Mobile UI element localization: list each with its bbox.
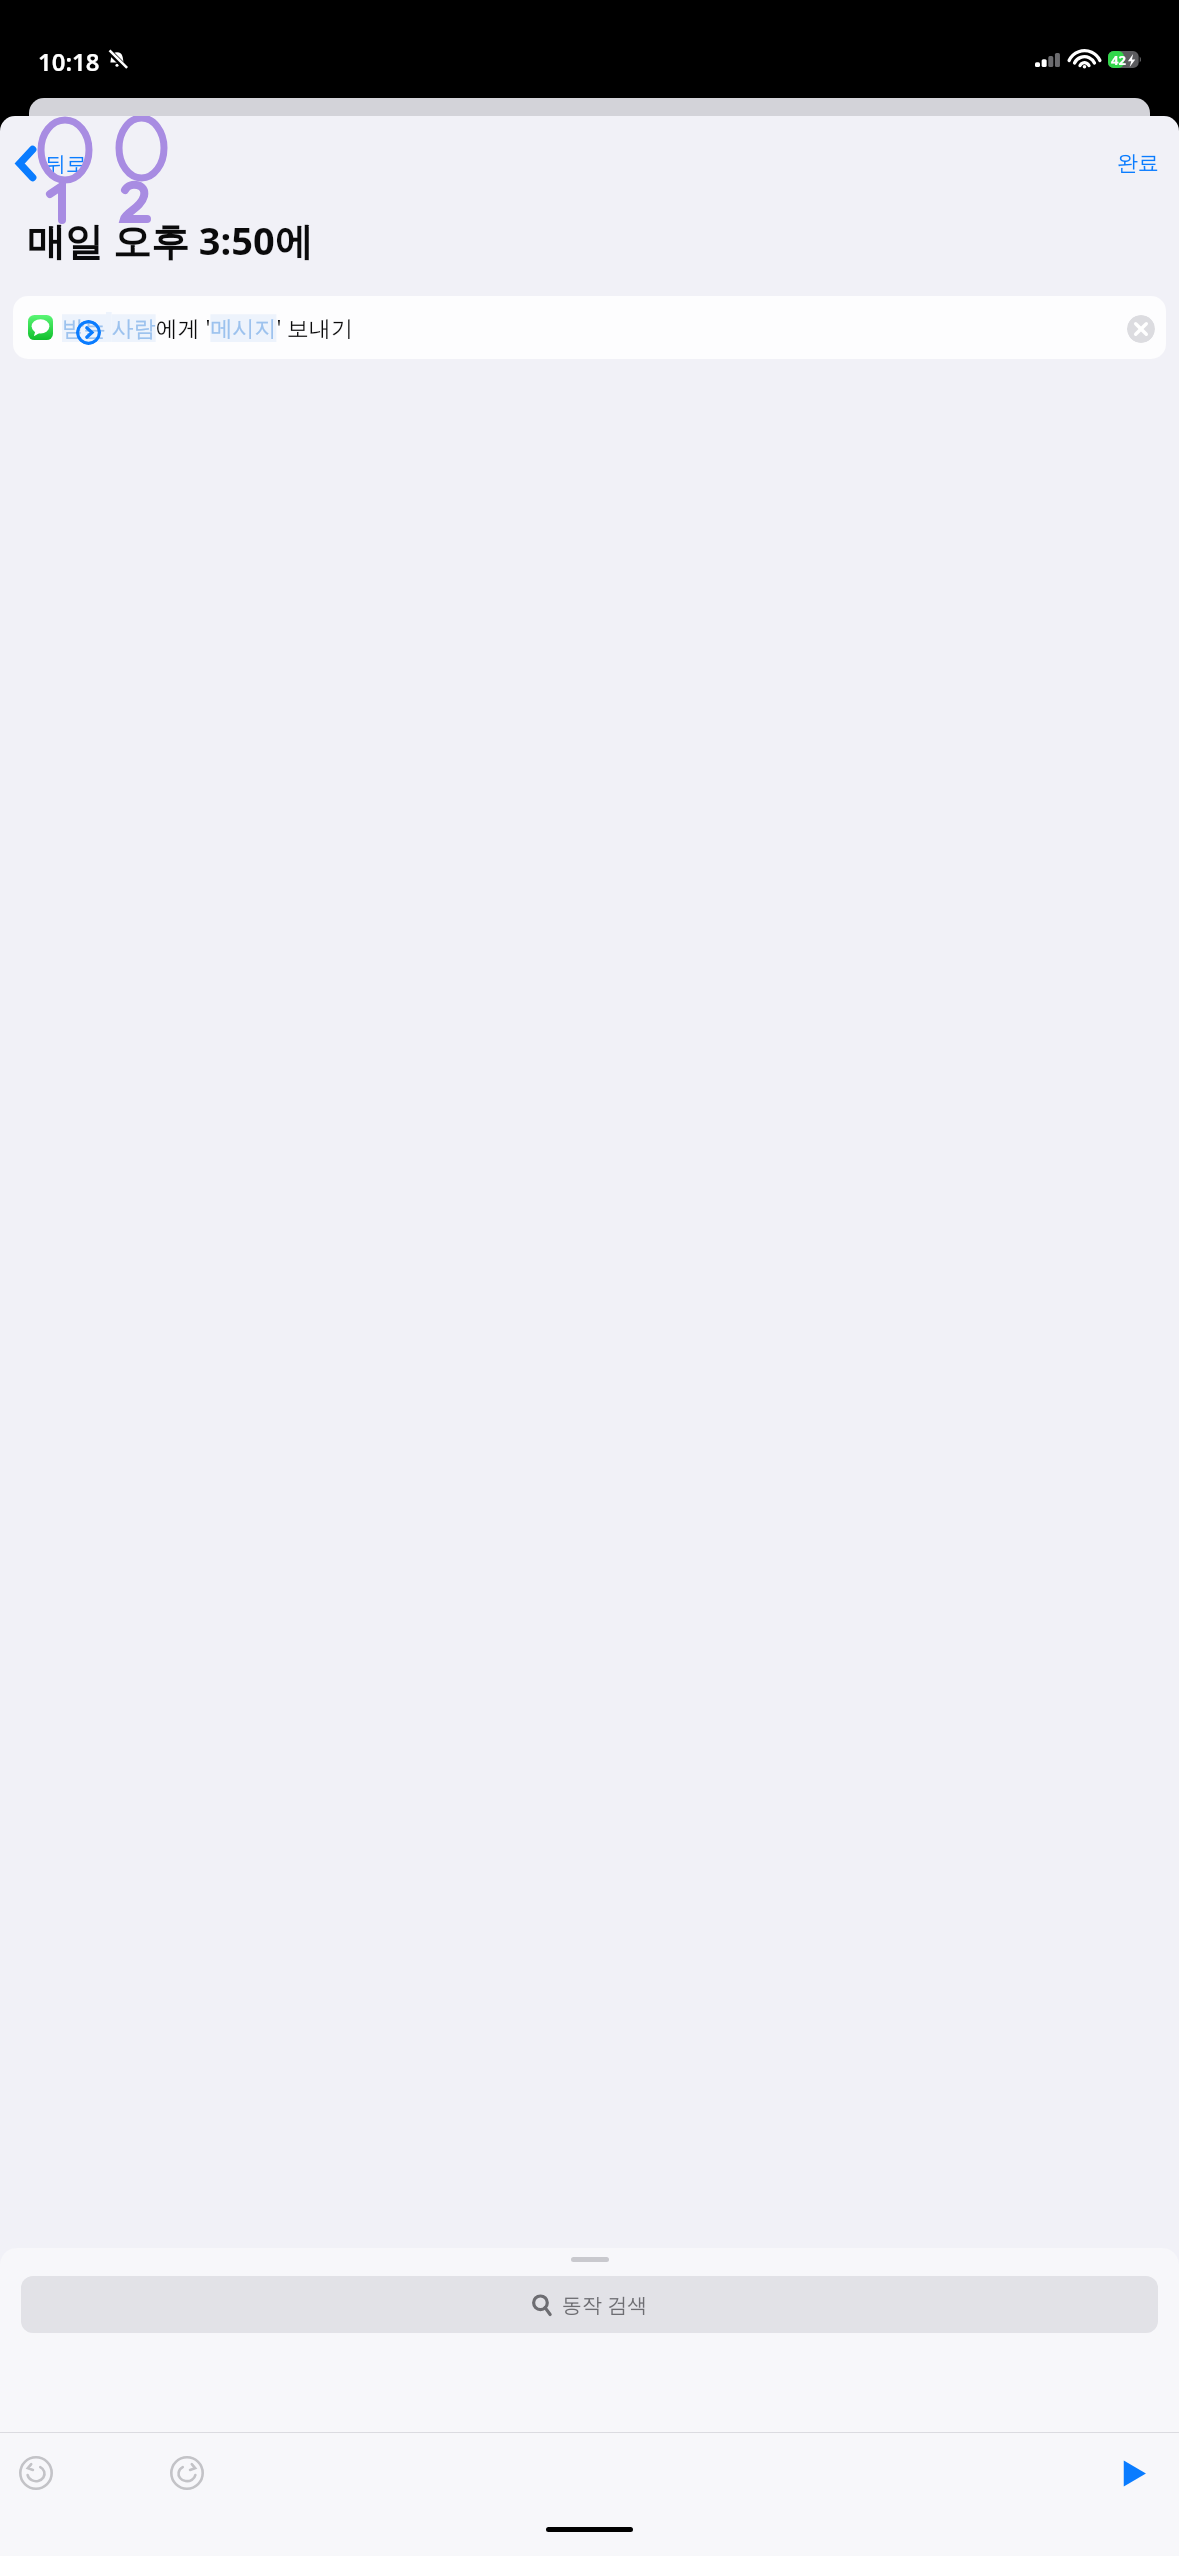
button[interactable]: 받는 사람에게 '메시지' 보내기 xyxy=(13,296,1166,359)
staticText: 42 xyxy=(1111,51,1126,69)
staticText: 동작 검색 xyxy=(562,2291,648,2318)
button[interactable]: 자세히 보기 xyxy=(76,320,101,345)
button[interactable]: 완료 xyxy=(1109,142,1167,184)
button[interactable]: 뒤로 xyxy=(10,140,95,187)
button[interactable]: 실행 취소 xyxy=(8,2445,64,2501)
button[interactable]: 실행 xyxy=(1105,2445,1161,2501)
staticText: 뒤로 xyxy=(45,151,87,177)
button[interactable]: 동작 검색 xyxy=(21,2276,1158,2333)
button[interactable]: 동작 제거 xyxy=(1127,315,1155,343)
staticText: 완료 xyxy=(1117,150,1159,176)
staticText: 매일 오후 3:50에 xyxy=(27,214,313,266)
button[interactable]: 다시 실행 xyxy=(159,2445,215,2501)
staticText: 받는 사람에게 '메시지' 보내기 xyxy=(62,312,1127,342)
staticText: 10:18 xyxy=(38,45,100,78)
